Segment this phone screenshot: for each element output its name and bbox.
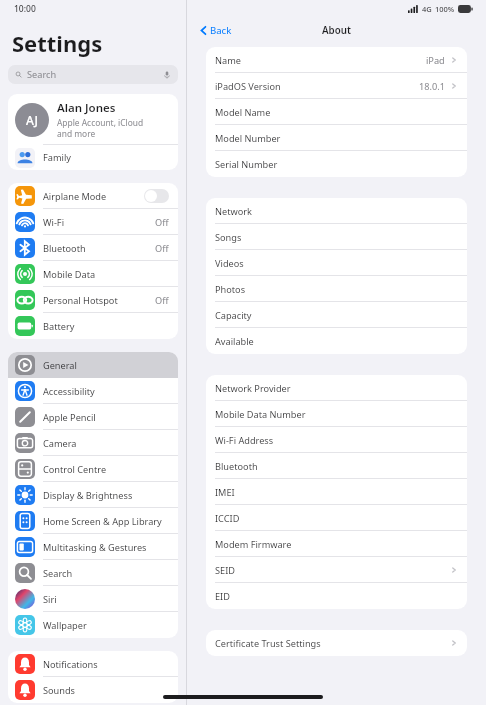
button[interactable]: Serial Number xyxy=(206,151,467,177)
staticText: AJ xyxy=(26,112,38,128)
button[interactable]: Bluetooth xyxy=(206,453,467,479)
staticText: Apple Pencil xyxy=(43,411,96,424)
staticText: iPad xyxy=(426,54,445,67)
staticText: EID xyxy=(215,590,230,603)
button[interactable]: General xyxy=(8,352,178,378)
staticText: Capacity xyxy=(215,309,252,322)
staticText: IMEI xyxy=(215,486,235,499)
button[interactable]: Siri xyxy=(8,586,178,612)
staticText: Wallpaper xyxy=(43,619,87,632)
button[interactable]: Network xyxy=(206,198,467,224)
button[interactable]: Wi-Fi Address xyxy=(206,427,467,453)
staticText: Alan Jones xyxy=(57,100,116,116)
staticText: iPadOS Version xyxy=(215,80,281,93)
staticText: Certificate Trust Settings xyxy=(215,637,321,650)
button[interactable]: Notifications xyxy=(8,651,178,677)
button[interactable]: Camera xyxy=(8,430,178,456)
staticText: 10:00 xyxy=(14,3,36,15)
staticText: Bluetooth xyxy=(215,460,258,473)
staticText: Wi-Fi xyxy=(43,216,65,229)
button[interactable]: Multitasking & Gestures xyxy=(8,534,178,560)
staticText: 4G xyxy=(422,4,432,14)
button[interactable]: Accessibility xyxy=(8,378,178,404)
staticText: Notifications xyxy=(43,658,98,671)
staticText: Model Name xyxy=(215,106,271,119)
staticText: Accessibility xyxy=(43,385,95,398)
button[interactable]: Model Number xyxy=(206,125,467,151)
button[interactable]: Name xyxy=(206,47,467,73)
button[interactable]: IMEI xyxy=(206,479,467,505)
button[interactable]: Battery xyxy=(8,313,178,339)
button[interactable]: Wallpaper xyxy=(8,612,178,638)
staticText: Control Centre xyxy=(43,463,107,476)
staticText: Off xyxy=(155,216,169,229)
staticText: Network xyxy=(215,205,252,218)
button[interactable]: Videos xyxy=(206,250,467,276)
staticText: Mobile Data Number xyxy=(215,408,306,421)
button[interactable]: Model Name xyxy=(206,99,467,125)
staticText: Siri xyxy=(43,593,57,606)
button[interactable]: Apple Pencil xyxy=(8,404,178,430)
button[interactable]: Network Provider xyxy=(206,375,467,401)
button[interactable]: Sounds xyxy=(8,677,178,703)
staticText: Family xyxy=(43,151,71,164)
button[interactable]: Mobile Data xyxy=(8,261,178,287)
button[interactable] xyxy=(144,189,169,203)
button[interactable]: iPadOS Version xyxy=(206,73,467,99)
button[interactable]: Control Centre xyxy=(8,456,178,482)
button[interactable]: Search xyxy=(8,560,178,586)
staticText: Sounds xyxy=(43,684,76,697)
button[interactable]: Certificate Trust Settings xyxy=(206,630,467,656)
staticText: Search xyxy=(43,567,73,580)
staticText: Camera xyxy=(43,437,77,450)
staticText: ICCID xyxy=(215,512,240,525)
button[interactable]: Mobile Data Number xyxy=(206,401,467,427)
staticText: Battery xyxy=(43,320,75,333)
button[interactable]: Airplane Mode xyxy=(8,183,178,209)
button[interactable]: SEID xyxy=(206,557,467,583)
button[interactable]: Songs xyxy=(206,224,467,250)
button[interactable]: ICCID xyxy=(206,505,467,531)
staticText: and more xyxy=(57,128,96,139)
staticText: Network Provider xyxy=(215,382,291,395)
button[interactable]: Photos xyxy=(206,276,467,302)
staticText: Airplane Mode xyxy=(43,190,107,203)
staticText: Model Number xyxy=(215,132,281,145)
staticText: Modem Firmware xyxy=(215,538,292,551)
button[interactable]: Available xyxy=(206,328,467,354)
button[interactable]: Personal Hotspot xyxy=(8,287,178,313)
staticText: Available xyxy=(215,335,254,348)
staticText: Home Screen & App Library xyxy=(43,515,162,528)
staticText: Serial Number xyxy=(215,158,278,171)
staticText: Mobile Data xyxy=(43,268,96,281)
button[interactable]: EID xyxy=(206,583,467,609)
button[interactable]: Family xyxy=(8,145,178,170)
staticText: Bluetooth xyxy=(43,242,86,255)
staticText: Off xyxy=(155,242,169,255)
staticText: Settings xyxy=(12,28,103,58)
button[interactable]: Modem Firmware xyxy=(206,531,467,557)
staticText: Back xyxy=(210,24,232,37)
staticText: Photos xyxy=(215,283,246,296)
button[interactable]: Search xyxy=(8,65,178,84)
button[interactable]: Bluetooth xyxy=(8,235,178,261)
staticText: SEID xyxy=(215,564,235,577)
staticText: Songs xyxy=(215,231,242,244)
button[interactable]: Wi-Fi xyxy=(8,209,178,235)
button[interactable]: Back xyxy=(198,21,234,40)
button[interactable]: Display & Brightness xyxy=(8,482,178,508)
button[interactable]: Home Screen & App Library xyxy=(8,508,178,534)
staticText: Display & Brightness xyxy=(43,489,133,502)
staticText: Videos xyxy=(215,257,244,270)
button[interactable]: AJ xyxy=(8,94,178,144)
staticText: Personal Hotspot xyxy=(43,294,118,307)
staticText: Name xyxy=(215,54,241,67)
staticText: Off xyxy=(155,294,169,307)
staticText: General xyxy=(43,359,77,372)
staticText: Apple Account, iCloud xyxy=(57,117,144,128)
button[interactable]: Capacity xyxy=(206,302,467,328)
staticText: 18.0.1 xyxy=(419,80,445,93)
staticText: Search xyxy=(27,68,57,81)
staticText: 100% xyxy=(435,4,455,14)
staticText: Multitasking & Gestures xyxy=(43,541,147,554)
